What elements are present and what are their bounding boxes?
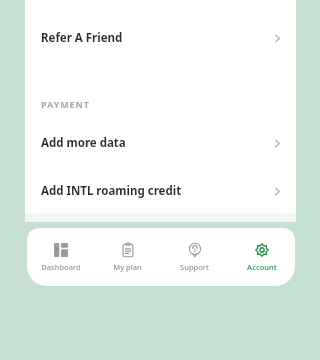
button[interactable]: Support [161, 228, 228, 286]
button[interactable]: Dashboard [27, 228, 94, 286]
button[interactable]: My plan [94, 228, 161, 286]
staticText: My plan [113, 262, 142, 272]
staticText: Account [247, 262, 277, 272]
button[interactable]: Refer A Friend [25, 6, 296, 70]
staticText: Add more data [41, 135, 272, 151]
staticText: Add INTL roaming credit [41, 183, 272, 199]
staticText: Dashboard [41, 262, 81, 272]
button[interactable]: Add INTL roaming credit [25, 179, 296, 203]
staticText: Support [180, 262, 209, 272]
staticText: Refer A Friend [41, 30, 272, 46]
button[interactable]: Add more data [25, 131, 296, 155]
button[interactable]: Account [228, 228, 295, 286]
staticText: PAYMENT [41, 98, 90, 110]
